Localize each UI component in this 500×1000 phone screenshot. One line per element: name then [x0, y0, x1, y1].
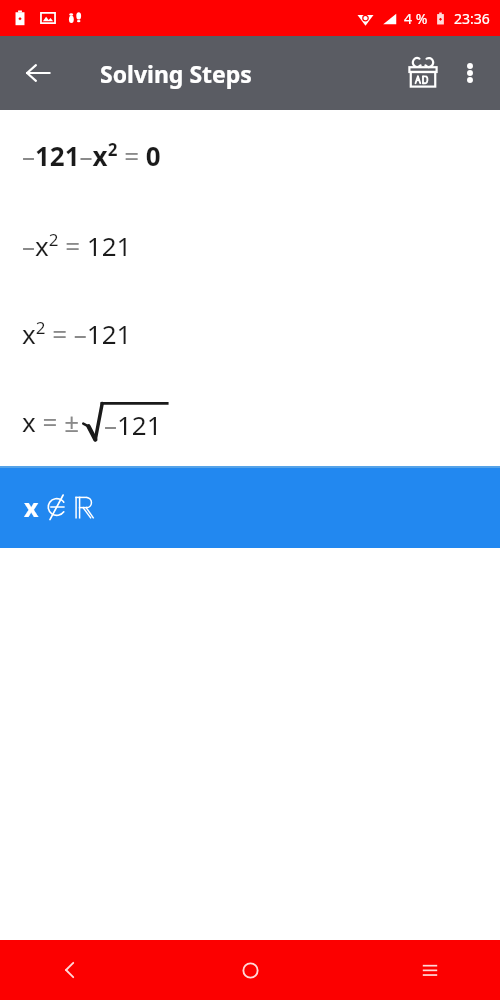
staticText: x2 = –121 [22, 316, 132, 351]
staticText: Solving Steps [100, 58, 252, 89]
button[interactable]: Home [220, 940, 280, 1000]
staticText: –121–x2 = 0 [22, 138, 161, 173]
staticText: –121 [104, 407, 162, 442]
staticText: –x2 = 121 [22, 228, 132, 263]
button[interactable]: –121–x2 = 0 [0, 110, 500, 200]
button[interactable]: More options [448, 51, 492, 95]
button[interactable]: Back [12, 47, 64, 99]
button[interactable]: –x2 = 121 [0, 200, 500, 290]
button[interactable]: x [0, 466, 500, 548]
button[interactable]: x2 = –121 [0, 290, 500, 376]
button[interactable]: Watch ad for reward [398, 48, 448, 98]
staticText: x = ± [22, 404, 80, 439]
button[interactable]: x = ± [0, 376, 500, 466]
staticText: 4 % [404, 9, 428, 28]
staticText: 23:36 [454, 9, 490, 28]
staticText: x [24, 490, 39, 524]
button[interactable]: Back [40, 940, 100, 1000]
button[interactable]: Recent apps [400, 940, 460, 1000]
